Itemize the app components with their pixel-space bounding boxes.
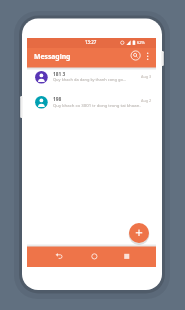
staticText: Aug 2 [141, 98, 152, 103]
staticText: Messaging [34, 52, 71, 61]
button[interactable] [27, 65, 156, 90]
button[interactable] [129, 223, 149, 243]
staticText: Aug 3 [141, 74, 152, 79]
staticText: 181 3 [53, 71, 66, 78]
staticText: 13:27 [85, 39, 97, 45]
button[interactable] [83, 247, 105, 267]
staticText: 62% [137, 40, 145, 45]
staticText: Quy khach da dang ky thanh cong go... [53, 77, 127, 82]
staticText: Quy khach co 3001 tr dong trong tai khoa… [53, 102, 141, 108]
button[interactable] [130, 50, 142, 62]
button[interactable] [115, 247, 137, 267]
button[interactable] [27, 90, 156, 115]
staticText: 198 [53, 96, 62, 103]
button[interactable] [143, 49, 152, 63]
button[interactable] [48, 247, 70, 267]
